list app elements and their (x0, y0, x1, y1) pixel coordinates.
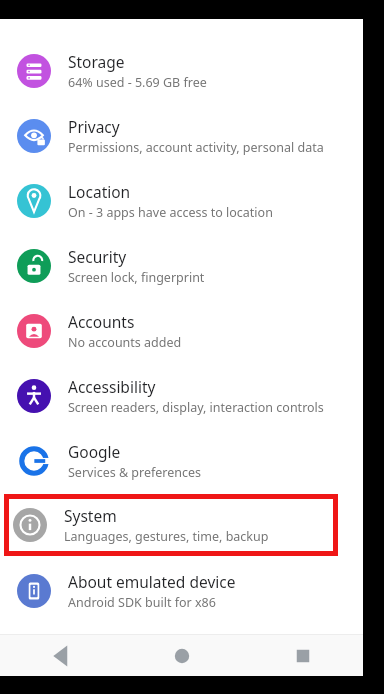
button[interactable]: Google (0, 428, 363, 493)
staticText: Permissions, account activity, personal … (68, 139, 324, 156)
staticText: System (64, 505, 117, 526)
button[interactable]: Location (0, 168, 363, 233)
button[interactable]: Security (0, 233, 363, 298)
staticText: Screen lock, fingerprint (68, 269, 205, 286)
staticText: Android SDK built for x86 (68, 594, 216, 611)
staticText: No accounts added (68, 334, 182, 351)
button[interactable]: About emulated device (0, 558, 363, 623)
button[interactable]: Back (0, 635, 121, 676)
staticText: Location (68, 181, 131, 202)
staticText: Languages, gestures, time, backup (64, 528, 269, 545)
staticText: Accounts (68, 311, 135, 332)
staticText: Services & preferences (68, 464, 202, 481)
staticText: 64% used - 5.69 GB free (68, 74, 207, 91)
button[interactable]: Recent apps (242, 635, 363, 676)
staticText: Security (68, 246, 127, 267)
button[interactable]: Home (121, 635, 242, 676)
staticText: About emulated device (68, 571, 236, 592)
button[interactable]: Accessibility (0, 363, 363, 428)
staticText: On - 3 apps have access to location (68, 204, 273, 221)
button[interactable]: Privacy (0, 103, 363, 168)
button[interactable]: System (4, 494, 338, 556)
staticText: Accessibility (68, 376, 156, 397)
staticText: Privacy (68, 116, 120, 137)
staticText: Screen readers, display, interaction con… (68, 399, 324, 416)
button[interactable]: Accounts (0, 298, 363, 363)
staticText: Google (68, 441, 121, 462)
staticText: Storage (68, 51, 125, 72)
button[interactable]: Storage (0, 38, 363, 103)
